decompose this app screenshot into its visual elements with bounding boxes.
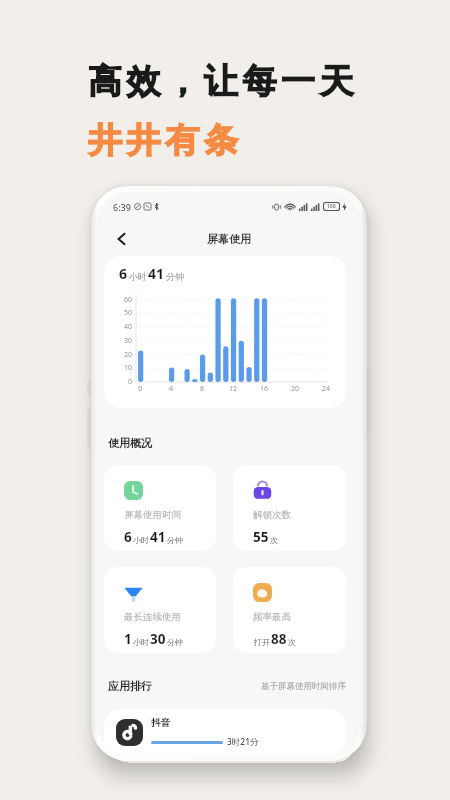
staticText: 最长连续使用 (124, 611, 181, 623)
staticText: 30 (150, 630, 166, 648)
button[interactable]: 最长连续使用 (104, 567, 216, 653)
staticText: 基于屏幕使用时间排序 (261, 681, 346, 692)
staticText: 频率最高 (253, 611, 291, 623)
staticText: 3时21分 (227, 736, 259, 748)
staticText: 6 (124, 528, 132, 546)
staticText: 高效，让每一天 (88, 60, 359, 103)
staticText: 应用排行 (108, 679, 152, 693)
staticText: 6:39 (113, 201, 131, 213)
staticText: 屏幕使用时间 (124, 509, 181, 521)
staticText: 1 (124, 630, 132, 648)
staticText: 6 (119, 264, 128, 283)
staticText: 55 (253, 528, 269, 546)
staticText: 解锁次数 (253, 509, 291, 521)
staticText: 井井有条 (88, 119, 243, 162)
staticText: 分钟 (167, 535, 183, 545)
staticText: 分钟 (166, 271, 184, 282)
staticText: 小时 (129, 271, 147, 282)
staticText: 41 (150, 528, 166, 546)
staticText: 抖音 (151, 717, 170, 729)
button[interactable]: 解锁次数 (233, 465, 346, 551)
staticText: 屏幕使用 (207, 232, 251, 246)
staticText: 分钟 (167, 637, 183, 647)
staticText: 次 (270, 535, 278, 545)
staticText: 小时 (133, 637, 149, 647)
staticText: 次 (288, 637, 296, 647)
button[interactable]: 抖音 (104, 709, 346, 755)
staticText: 打开 (254, 637, 270, 647)
staticText: 使用概况 (108, 436, 152, 450)
staticText: 41 (148, 264, 165, 283)
button[interactable]: 频率最高 (233, 567, 346, 653)
button[interactable]: 屏幕使用时间 (104, 465, 216, 551)
staticText: 88 (271, 630, 287, 648)
button[interactable]: Back (110, 228, 132, 250)
staticText: 100 (327, 203, 336, 210)
staticText: 小时 (133, 535, 149, 545)
